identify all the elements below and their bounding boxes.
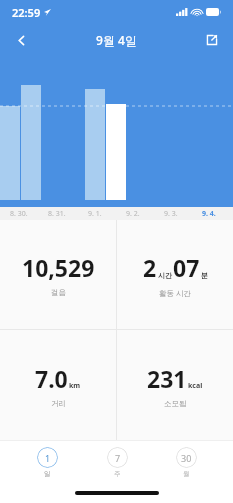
staticText: 07 bbox=[173, 252, 200, 283]
staticText: 거리 bbox=[51, 399, 66, 408]
staticText: 일 bbox=[44, 470, 51, 478]
staticText: 9월 4일 bbox=[96, 32, 137, 48]
staticText: 2 bbox=[143, 252, 157, 283]
staticText: 30 bbox=[181, 452, 192, 464]
staticText: 7 bbox=[115, 452, 121, 464]
staticText: 월 bbox=[183, 470, 190, 478]
staticText: 활동 시간 bbox=[159, 288, 191, 298]
staticText: 9. 3. bbox=[164, 209, 178, 219]
staticText: km bbox=[69, 381, 81, 391]
staticText: 8. 30. bbox=[10, 209, 28, 219]
button[interactable]: 7 bbox=[94, 447, 140, 478]
staticText: 1 bbox=[45, 452, 51, 464]
button[interactable]: Share bbox=[197, 25, 227, 55]
staticText: 분 bbox=[201, 271, 208, 280]
staticText: 시간 bbox=[158, 271, 172, 280]
staticText: 9. 1. bbox=[88, 209, 102, 219]
staticText: 9. 4. bbox=[202, 209, 216, 219]
button[interactable]: Back bbox=[6, 25, 36, 55]
staticText: 10,529 bbox=[22, 252, 95, 283]
staticText: 걸음 bbox=[51, 288, 66, 297]
staticText: kcal bbox=[188, 381, 203, 391]
button[interactable]: 30 bbox=[163, 447, 209, 478]
button[interactable]: 1 bbox=[24, 447, 70, 478]
staticText: 8. 31. bbox=[48, 209, 66, 219]
staticText: 231 bbox=[147, 363, 187, 394]
staticText: 주 bbox=[114, 470, 121, 478]
staticText: 22:59 bbox=[12, 5, 41, 20]
staticText: 9. 2. bbox=[126, 209, 140, 219]
staticText: 7.0 bbox=[35, 363, 68, 394]
staticText: 소모됨 bbox=[164, 399, 187, 408]
